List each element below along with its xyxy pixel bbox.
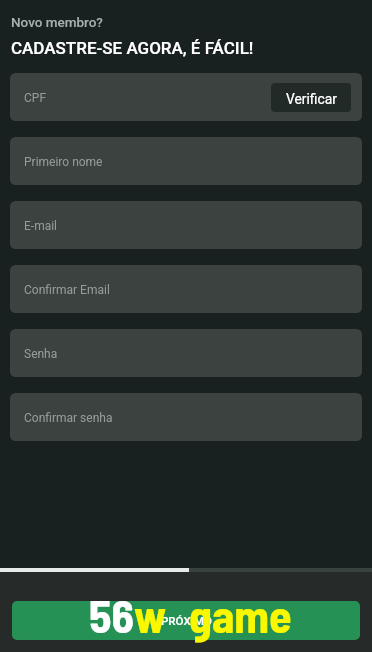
staticText: E-mail bbox=[24, 219, 58, 233]
staticText: PRÓXIMO bbox=[161, 614, 212, 627]
staticText: Novo membro? bbox=[11, 14, 103, 30]
staticText: 56 bbox=[89, 587, 134, 642]
staticText: Verificar bbox=[286, 91, 337, 107]
button[interactable]: CPF bbox=[10, 73, 362, 121]
staticText: CADASTRE-SE AGORA, É FÁCIL! bbox=[11, 38, 254, 58]
staticText: Senha bbox=[24, 347, 58, 361]
staticText: w bbox=[134, 587, 167, 642]
staticText: Primeiro nome bbox=[24, 155, 103, 169]
button[interactable]: Verificar bbox=[271, 83, 351, 112]
staticText: Confirmar senha bbox=[24, 411, 113, 425]
staticText: CPF bbox=[24, 91, 47, 105]
button[interactable]: PRÓXIMO bbox=[12, 601, 360, 640]
staticText: Confirmar Email bbox=[24, 283, 110, 297]
button[interactable]: Confirmar senha bbox=[10, 393, 362, 441]
button[interactable]: Primeiro nome bbox=[10, 137, 362, 185]
button[interactable]: Senha bbox=[10, 329, 362, 377]
button[interactable]: Confirmar Email bbox=[10, 265, 362, 313]
staticText: game bbox=[189, 587, 292, 642]
button[interactable]: E-mail bbox=[10, 201, 362, 249]
